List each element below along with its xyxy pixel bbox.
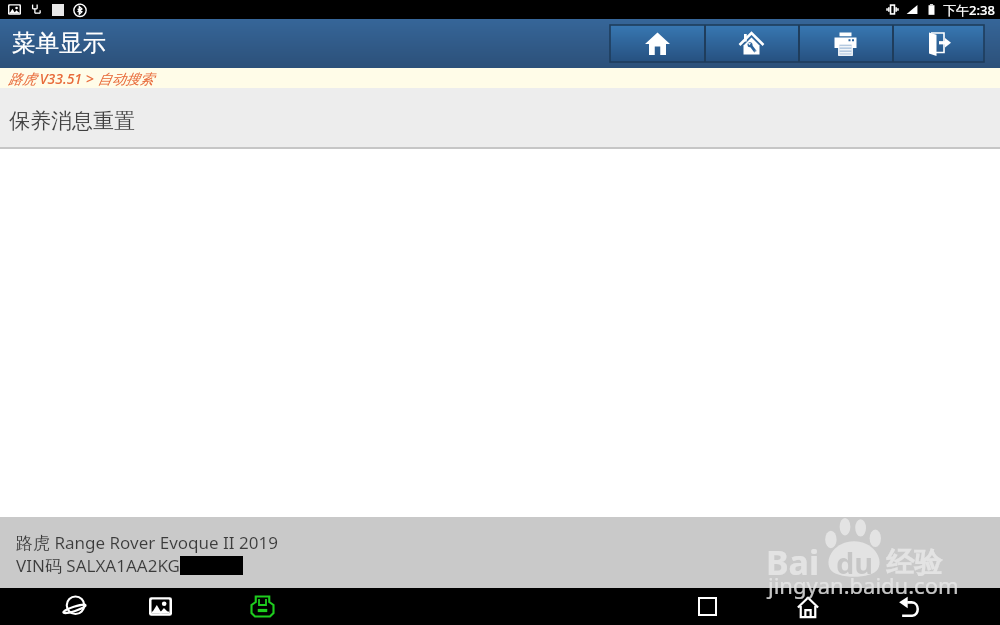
button[interactable]: Exit <box>892 25 984 62</box>
staticText: jingyan.baidu.com <box>768 570 959 600</box>
button[interactable]: VCI <box>250 594 275 619</box>
staticText: 菜单显示 <box>12 28 106 58</box>
staticText: du <box>836 543 874 582</box>
button[interactable]: Home <box>610 25 704 62</box>
staticText: VIN码 SALXA1AA2KG <box>16 554 180 577</box>
button[interactable]: Recents <box>698 597 717 616</box>
staticText: 保养消息重置 <box>9 108 135 134</box>
button[interactable]: Diagnostics <box>704 25 798 62</box>
staticText: 路虎 V33.51 > 自动搜索 <box>8 69 154 88</box>
staticText: Bai <box>766 539 820 585</box>
staticText: 下午2:38 <box>943 1 995 19</box>
staticText: 路虎 Range Rover Evoque II 2019 <box>16 531 278 554</box>
button[interactable]: Print <box>798 25 892 62</box>
staticText: 经验 <box>886 545 942 580</box>
button[interactable]: Gallery <box>149 595 172 618</box>
button[interactable]: Browser <box>62 594 87 619</box>
button[interactable]: Back <box>898 595 921 618</box>
button[interactable]: Home <box>797 596 819 618</box>
